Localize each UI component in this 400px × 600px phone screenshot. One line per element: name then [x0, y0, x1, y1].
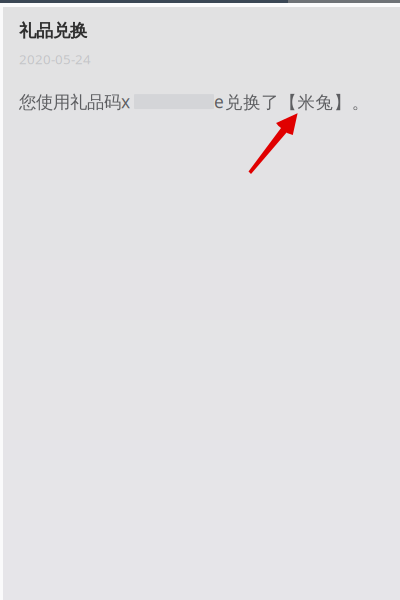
staticText: 礼品兑换	[19, 20, 87, 41]
staticText: 2020-05-24	[19, 50, 91, 68]
button[interactable]: 礼品兑换	[0, 7, 400, 127]
staticText: e兑换了【米兔】。	[214, 90, 369, 113]
staticText: 您使用礼品码x	[19, 90, 130, 113]
